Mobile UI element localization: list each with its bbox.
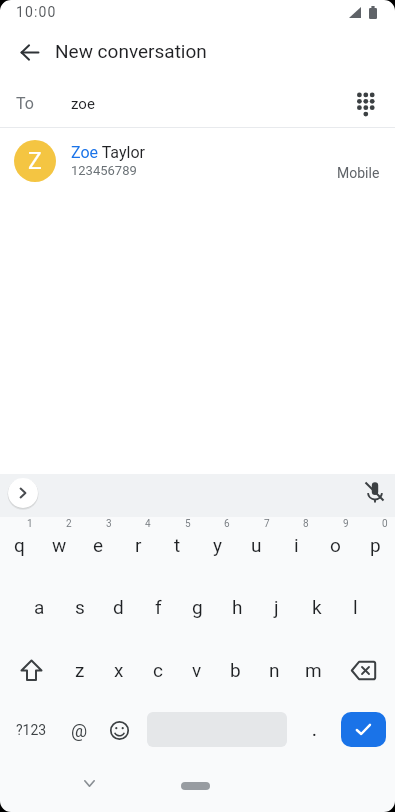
staticText: 8 <box>303 518 309 530</box>
button[interactable]: q <box>0 525 39 565</box>
button[interactable]: x <box>99 650 138 690</box>
staticText: 10:00 <box>16 4 57 20</box>
staticText: Z <box>28 148 42 175</box>
button[interactable]: c <box>138 650 177 690</box>
button[interactable]: v <box>177 650 216 690</box>
staticText: o <box>330 534 341 556</box>
button[interactable]: . <box>300 712 328 748</box>
staticText: d <box>113 596 124 618</box>
staticText: e <box>93 534 104 556</box>
staticText: b <box>230 659 241 681</box>
button[interactable]: p <box>356 525 395 565</box>
staticText: f <box>155 596 162 618</box>
staticText: z <box>75 659 85 681</box>
staticText: 5 <box>185 518 191 530</box>
staticText: @ <box>71 720 88 741</box>
staticText: h <box>232 596 243 618</box>
button[interactable]: e <box>79 525 118 565</box>
button[interactable] <box>6 28 54 76</box>
button[interactable] <box>101 712 137 748</box>
staticText: y <box>213 534 222 556</box>
button[interactable]: w <box>40 525 79 565</box>
staticText: n <box>269 659 280 681</box>
button[interactable] <box>341 712 386 747</box>
button[interactable]: ?123 <box>10 712 52 748</box>
staticText: ?123 <box>16 722 47 738</box>
staticText: p <box>370 534 381 556</box>
button[interactable]: b <box>216 650 255 690</box>
staticText: Mobile <box>337 165 380 181</box>
button[interactable]: l <box>336 587 375 627</box>
button[interactable] <box>8 478 38 508</box>
button[interactable]: @ <box>60 712 98 748</box>
staticText: i <box>294 534 299 556</box>
staticText: s <box>75 596 85 618</box>
staticText: x <box>114 659 124 681</box>
button[interactable]: t <box>158 525 197 565</box>
staticText: 6 <box>224 518 230 530</box>
staticText: 2 <box>66 518 72 530</box>
button[interactable]: r <box>119 525 158 565</box>
staticText: q <box>14 534 25 556</box>
button[interactable]: f <box>139 587 178 627</box>
staticText: To <box>16 94 34 113</box>
button[interactable]: o <box>316 525 355 565</box>
staticText: m <box>305 659 322 681</box>
staticText: c <box>153 659 163 681</box>
staticText: l <box>353 596 358 618</box>
button[interactable]: z <box>60 650 99 690</box>
button[interactable]: u <box>237 525 276 565</box>
staticText: 0 <box>382 518 388 530</box>
button[interactable]: i <box>277 525 316 565</box>
button[interactable]: k <box>297 587 336 627</box>
button[interactable]: d <box>99 587 138 627</box>
staticText: zoe <box>71 95 95 113</box>
staticText: . <box>312 720 317 740</box>
button[interactable]: To <box>0 81 395 127</box>
button[interactable]: a <box>20 587 59 627</box>
staticText: j <box>274 596 279 618</box>
staticText: Zoe Taylor <box>71 143 145 162</box>
staticText: k <box>312 596 322 618</box>
button[interactable] <box>8 650 54 690</box>
button[interactable]: s <box>60 587 99 627</box>
button[interactable] <box>340 650 386 690</box>
staticText: 1 <box>27 518 33 530</box>
staticText: 4 <box>145 518 151 530</box>
staticText: t <box>174 534 181 556</box>
staticText: r <box>135 534 142 556</box>
staticText: g <box>192 596 203 618</box>
button[interactable]: n <box>255 650 294 690</box>
staticText: u <box>251 534 262 556</box>
staticText: New conversation <box>55 40 207 62</box>
button[interactable]: h <box>218 587 257 627</box>
button[interactable]: y <box>198 525 237 565</box>
button[interactable]: j <box>257 587 296 627</box>
staticText: 123456789 <box>71 163 137 178</box>
staticText: a <box>34 596 45 618</box>
staticText: 7 <box>264 518 270 530</box>
staticText: v <box>192 659 202 681</box>
staticText: w <box>52 534 67 556</box>
staticText: 3 <box>106 518 112 530</box>
button[interactable]: Z <box>0 133 395 189</box>
button[interactable]: g <box>178 587 217 627</box>
staticText: 9 <box>343 518 349 530</box>
button[interactable] <box>363 481 387 505</box>
button[interactable]: m <box>294 650 333 690</box>
